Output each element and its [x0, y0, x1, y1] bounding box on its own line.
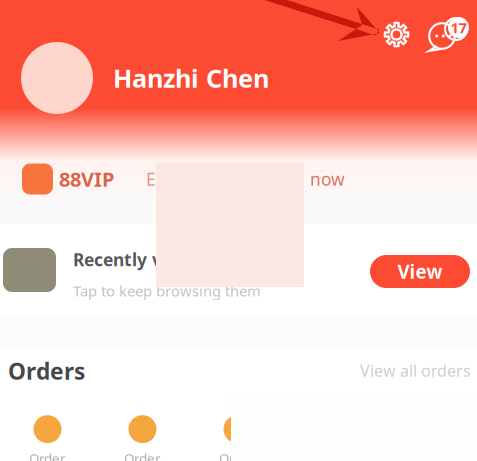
- staticText: Orders: [8, 356, 85, 386]
- staticText: View: [397, 259, 442, 284]
- button[interactable]: View: [370, 255, 470, 288]
- button[interactable]: Hanzhi Chen: [21, 42, 269, 114]
- staticText: Hanzhi Chen: [113, 61, 269, 95]
- button[interactable]: Order: [95, 421, 190, 461]
- staticText: Join now: [275, 167, 345, 190]
- button[interactable]: Order: [190, 421, 285, 461]
- button[interactable]: View all orders: [360, 360, 471, 381]
- button[interactable]: Messages: [427, 16, 471, 54]
- button[interactable]: Order: [0, 421, 95, 461]
- staticText: Tap to keep browsing them: [73, 281, 261, 300]
- staticText: View all orders: [360, 360, 471, 381]
- staticText: Order: [124, 449, 161, 461]
- button[interactable]: Settings: [384, 22, 409, 47]
- staticText: 17: [450, 18, 466, 37]
- staticText: 88VIP: [59, 166, 114, 192]
- staticText: Recently viewed items: [73, 248, 267, 271]
- staticText: Order: [29, 449, 66, 461]
- staticText: Exclusive: [146, 167, 219, 190]
- button[interactable]: 88VIP: [0, 150, 477, 208]
- staticText: Order: [219, 449, 256, 461]
